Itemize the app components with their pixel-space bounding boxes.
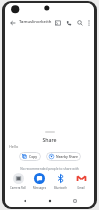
button[interactable]: Cast [52,17,63,28]
staticText: Share [42,136,57,143]
button[interactable]: More options [85,17,92,28]
staticText: Gmail [77,186,85,190]
button[interactable]: Recent apps [69,195,80,206]
staticText: Copy [29,154,38,159]
button[interactable]: Back [19,195,30,206]
staticText: Messages [33,186,46,190]
button[interactable]: Messages [29,172,49,191]
button[interactable]: Home [44,195,55,206]
staticText: No recommended people to share with [20,167,79,171]
staticText: Tamuslinorkeith [19,19,52,25]
button[interactable]: Camera Roll [8,172,28,191]
button[interactable]: Copy [19,152,41,161]
button[interactable]: Back [7,17,18,28]
button[interactable]: Gmail [71,172,91,191]
staticText: Nearby Share [56,154,78,159]
staticText: Camera Roll [10,186,26,190]
button[interactable]: Nearby Share [46,152,81,161]
staticText: Hello [9,144,19,149]
button[interactable]: Search [74,17,85,28]
button[interactable]: Bluetooth [50,172,70,191]
button[interactable]: Call [63,17,74,28]
staticText: Bluetooth [54,186,67,190]
